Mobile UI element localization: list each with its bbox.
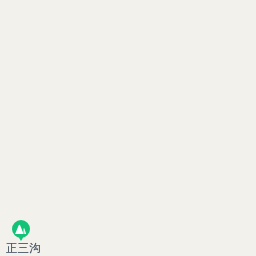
staticText: 正三沟	[6, 241, 41, 255]
staticText: 正三沟	[6, 241, 41, 255]
button[interactable]: 正三沟 景点标记	[4, 219, 40, 254]
